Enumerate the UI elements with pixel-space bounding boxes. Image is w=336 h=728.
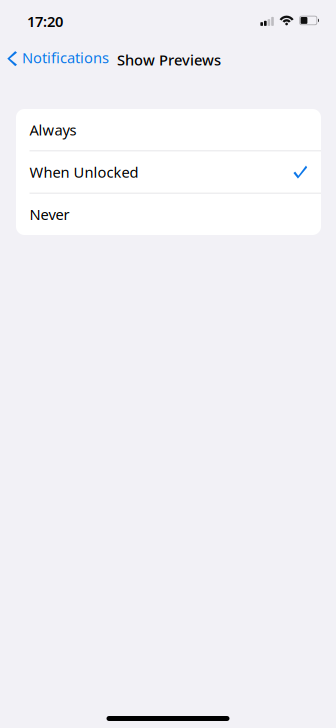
staticText: Show Previews bbox=[117, 50, 221, 69]
button[interactable]: Always bbox=[16, 109, 321, 150]
button[interactable]: When Unlocked bbox=[16, 151, 321, 193]
button[interactable]: Never bbox=[16, 194, 321, 235]
button[interactable]: Notifications bbox=[1, 42, 111, 72]
staticText: 17:20 bbox=[27, 11, 63, 31]
staticText: Notifications bbox=[22, 48, 109, 67]
staticText: Always bbox=[29, 120, 76, 139]
staticText: Never bbox=[29, 205, 69, 224]
staticText: When Unlocked bbox=[29, 162, 138, 182]
